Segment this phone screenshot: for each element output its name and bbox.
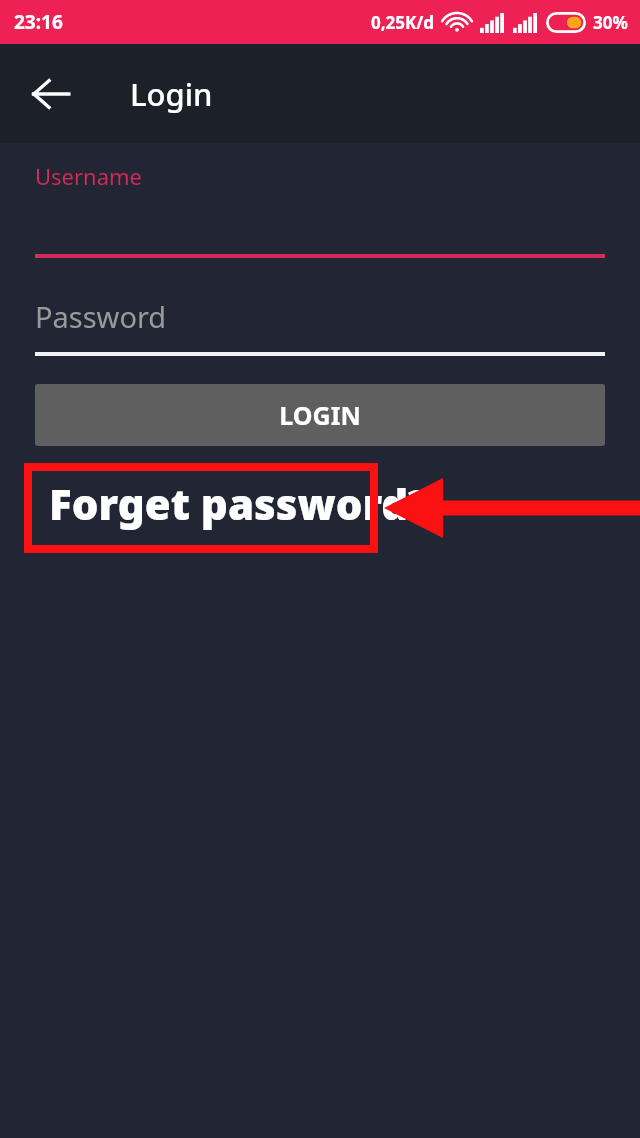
- staticText: Username: [35, 161, 143, 191]
- button[interactable]: Password: [35, 299, 605, 356]
- staticText: Password: [35, 297, 167, 336]
- staticText: 30%: [593, 11, 628, 34]
- button[interactable]: LOGIN: [35, 384, 605, 446]
- staticText: LOGIN: [279, 398, 361, 432]
- button[interactable]: Back: [18, 61, 84, 127]
- button[interactable]: Forget password?: [35, 468, 416, 538]
- staticText: Login: [130, 73, 213, 115]
- button[interactable]: Username: [35, 161, 605, 258]
- staticText: 0,25K/d: [371, 11, 435, 34]
- staticText: Forget password?: [49, 475, 430, 532]
- staticText: 23:16: [14, 9, 63, 35]
